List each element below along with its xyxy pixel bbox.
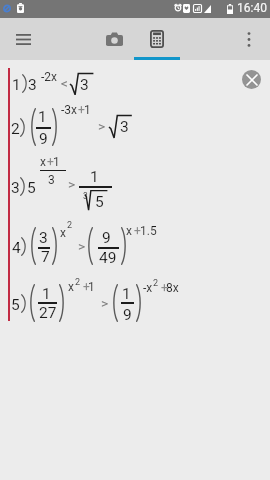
staticText: x	[68, 280, 74, 294]
staticText: 1.5	[140, 224, 157, 238]
staticText: 3	[11, 179, 20, 197]
staticText: 1	[90, 168, 99, 186]
staticText: 8x	[166, 281, 179, 295]
staticText: 2	[75, 277, 81, 288]
staticText: +	[47, 155, 54, 169]
staticText: 1	[122, 285, 131, 303]
button[interactable]: Close	[242, 70, 261, 89]
button[interactable]: Calculator	[137, 19, 177, 59]
button[interactable]: Camera	[94, 19, 134, 59]
staticText: 1	[53, 155, 60, 169]
staticText: 9	[123, 306, 132, 324]
staticText: +	[134, 224, 141, 238]
staticText: 2	[153, 278, 159, 289]
staticText: -x	[143, 281, 153, 295]
staticText: 1	[42, 285, 51, 303]
staticText: x	[40, 155, 46, 169]
staticText: >	[68, 176, 76, 192]
staticText: 4	[12, 239, 21, 257]
staticText: -3x	[61, 103, 78, 117]
staticText: 3	[48, 173, 55, 187]
staticText: >	[101, 295, 109, 311]
staticText: -2x	[41, 70, 58, 84]
staticText: 49	[99, 249, 117, 267]
staticText: x	[126, 224, 132, 238]
staticText: <	[61, 75, 68, 91]
staticText: 3	[83, 191, 88, 201]
staticText: 5	[11, 296, 20, 314]
staticText: 3	[28, 76, 37, 94]
staticText: 16:40	[237, 1, 267, 15]
staticText: +	[161, 281, 168, 295]
staticText: 3	[39, 229, 48, 247]
staticText: 1	[38, 108, 47, 126]
staticText: 9	[39, 130, 48, 148]
staticText: 1	[84, 103, 91, 117]
staticText: 5	[95, 193, 104, 211]
staticText: 2	[11, 120, 20, 138]
staticText: >	[78, 238, 86, 254]
staticText: 1	[12, 76, 21, 94]
staticText: x	[60, 226, 66, 240]
staticText: 3	[120, 118, 129, 136]
staticText: 1	[88, 280, 95, 294]
button[interactable]: Navigation menu	[6, 22, 40, 56]
staticText: 9	[102, 229, 111, 247]
staticText: 5	[27, 179, 36, 197]
staticText: 27	[39, 304, 57, 322]
staticText: +	[83, 280, 90, 294]
staticText: +	[78, 103, 85, 117]
staticText: 2	[67, 220, 73, 231]
staticText: 7	[41, 248, 50, 266]
button[interactable]: More options	[232, 22, 266, 56]
staticText: 3	[80, 76, 89, 94]
staticText: >	[98, 118, 106, 134]
